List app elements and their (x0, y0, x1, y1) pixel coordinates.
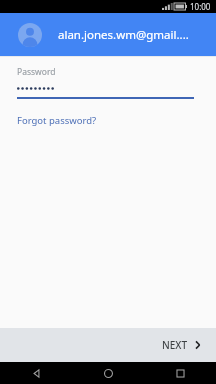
button[interactable]: Back (0, 362, 72, 384)
staticText: 10:00 (190, 1, 211, 12)
staticText: NEXT (162, 338, 188, 352)
button[interactable]: Recent apps (144, 362, 216, 384)
staticText: alan.jones.wm@gmail.... (58, 27, 189, 43)
button[interactable]: Forgot password? (0, 112, 105, 129)
button[interactable]: alan.jones.wm@gmail.... (0, 13, 216, 56)
staticText: Forgot password? (17, 114, 97, 127)
button[interactable]: Home (72, 362, 144, 384)
button[interactable]: NEXT (148, 331, 216, 359)
staticText: Password (17, 66, 56, 78)
